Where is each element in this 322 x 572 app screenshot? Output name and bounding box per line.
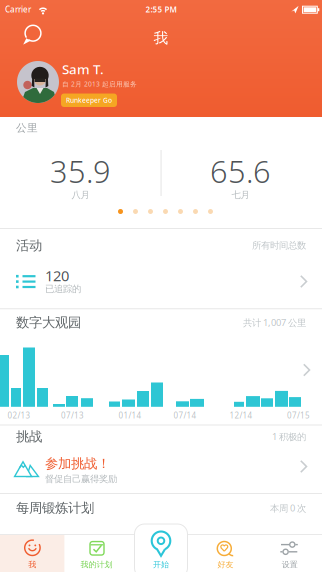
staticText: 07/13 [61,410,84,421]
staticText: 07/14 [173,410,196,421]
staticText: 12/14 [229,410,252,421]
staticText: 公里 [16,121,38,134]
button[interactable] [0,447,322,493]
staticText: 02/13 [7,410,30,421]
staticText: 65.6 [210,151,271,191]
button[interactable] [134,524,187,572]
button[interactable] [0,256,322,308]
staticText: 每周锻炼计划 [16,500,94,516]
staticText: 八月 [71,189,89,201]
staticText: 已追踪的 [45,283,81,295]
button[interactable]: Runkeeper Go [61,93,117,107]
staticText: 我 [153,29,168,47]
button[interactable] [258,534,322,572]
staticText: 1 积极的 [272,430,306,443]
staticText: 好友 [217,560,233,569]
staticText: 120 [45,266,69,285]
staticText: 参加挑战！ [45,455,110,472]
staticText: 设置 [282,560,298,569]
button[interactable] [0,534,64,572]
button[interactable] [18,20,48,50]
staticText: Carrier [5,4,31,15]
staticText: 我 [28,560,36,569]
staticText: 自 2月 2013 起启用服务 [62,80,137,88]
staticText: 01/14 [118,410,141,421]
staticText: 07/15 [287,410,310,421]
button[interactable] [0,308,322,424]
button[interactable] [193,534,258,572]
staticText: 共计 1,007 公里 [243,316,306,329]
staticText: 本周 0 次 [270,502,306,514]
staticText: 我的计划 [81,560,113,569]
staticText: 督促自己赢得奖励 [45,473,117,485]
staticText: 数字大观园 [16,314,81,331]
staticText: 挑战 [16,428,42,445]
staticText: 35.9 [50,151,111,191]
staticText: 开始 [153,560,169,569]
staticText: Sam T. [62,60,104,78]
staticText: 所有时间总数 [252,240,306,251]
button[interactable] [64,534,129,572]
staticText: 七月 [231,189,249,201]
staticText: 活动 [16,237,42,254]
staticText: Runkeeper Go [66,96,112,105]
staticText: 2:55 PM [145,4,176,15]
